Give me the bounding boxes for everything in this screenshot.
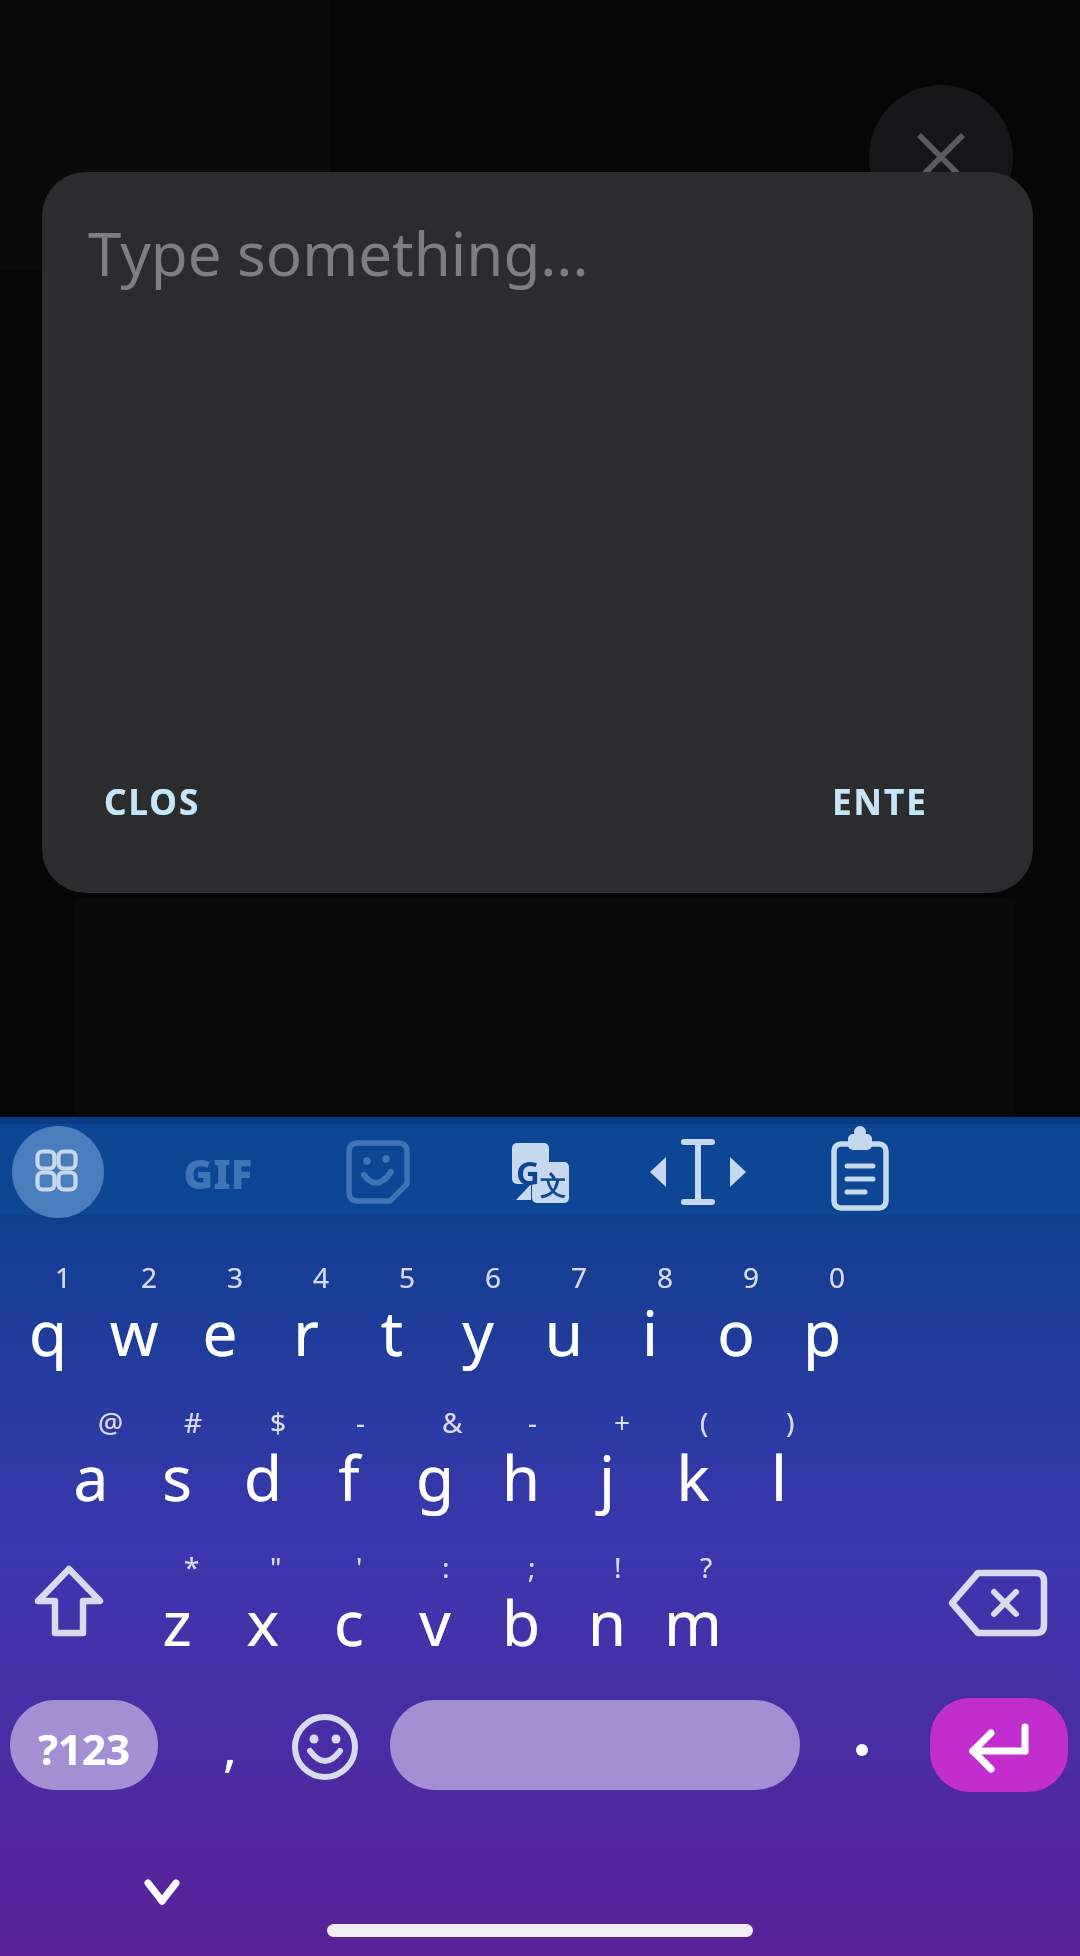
staticText: CLOSE bbox=[104, 778, 204, 836]
staticText: # bbox=[184, 1403, 203, 1441]
button[interactable]: Hide keyboard bbox=[112, 1845, 212, 1939]
button[interactable]: Stickers bbox=[330, 1124, 426, 1220]
staticText: 1 bbox=[55, 1258, 72, 1296]
staticText: 9 bbox=[743, 1258, 760, 1296]
button[interactable]: Period bbox=[812, 1702, 912, 1792]
button[interactable]: o bbox=[693, 1256, 779, 1388]
staticText: l bbox=[736, 1435, 822, 1519]
button[interactable]: i bbox=[607, 1256, 693, 1388]
staticText: Type something... bbox=[88, 212, 589, 294]
button[interactable]: l bbox=[736, 1401, 822, 1533]
staticText: ; bbox=[528, 1548, 536, 1586]
staticText: $ bbox=[270, 1403, 287, 1441]
staticText: 4 bbox=[313, 1258, 330, 1296]
button[interactable]: m bbox=[650, 1546, 736, 1678]
staticText: - bbox=[528, 1403, 538, 1441]
staticText: z bbox=[134, 1580, 220, 1664]
button[interactable]: u bbox=[521, 1256, 607, 1388]
button[interactable]: c bbox=[306, 1546, 392, 1678]
button[interactable]: a bbox=[48, 1401, 134, 1533]
staticText: * bbox=[184, 1548, 200, 1586]
button[interactable]: p bbox=[779, 1256, 865, 1388]
button[interactable]: q bbox=[5, 1256, 91, 1388]
staticText: ?123 bbox=[10, 1720, 158, 1777]
staticText: s bbox=[134, 1435, 220, 1519]
staticText: n bbox=[564, 1580, 650, 1664]
button[interactable]: g bbox=[392, 1401, 478, 1533]
button[interactable]: s bbox=[134, 1401, 220, 1533]
button[interactable]: Enter bbox=[930, 1698, 1068, 1792]
button[interactable]: Emoji bbox=[277, 1702, 373, 1794]
button[interactable]: Type something... bbox=[88, 212, 848, 312]
button[interactable]: k bbox=[650, 1401, 736, 1533]
button[interactable]: z bbox=[134, 1546, 220, 1678]
button[interactable]: x bbox=[220, 1546, 306, 1678]
staticText: & bbox=[442, 1403, 463, 1441]
staticText: ' bbox=[356, 1548, 363, 1586]
staticText: i bbox=[607, 1290, 693, 1374]
staticText: t bbox=[349, 1290, 435, 1374]
staticText: 2 bbox=[141, 1258, 158, 1296]
staticText: e bbox=[177, 1290, 263, 1374]
button[interactable]: Shift bbox=[14, 1546, 126, 1678]
staticText: ( bbox=[700, 1403, 709, 1441]
button[interactable]: ENTER bbox=[832, 778, 952, 836]
staticText: g bbox=[392, 1435, 478, 1519]
button[interactable]: h bbox=[478, 1401, 564, 1533]
button[interactable]: Backspace bbox=[942, 1546, 1054, 1678]
staticText: x bbox=[220, 1580, 306, 1664]
button[interactable]: ?123 bbox=[10, 1700, 158, 1790]
button[interactable]: , bbox=[180, 1702, 280, 1792]
button[interactable]: Text editing bbox=[650, 1124, 746, 1220]
button[interactable]: r bbox=[263, 1256, 349, 1388]
staticText: u bbox=[521, 1290, 607, 1374]
button[interactable]: n bbox=[564, 1546, 650, 1678]
button[interactable]: Space bbox=[390, 1700, 800, 1790]
staticText: ) bbox=[786, 1403, 795, 1441]
button[interactable]: j bbox=[564, 1401, 650, 1533]
staticText: y bbox=[435, 1290, 521, 1374]
button[interactable]: b bbox=[478, 1546, 564, 1678]
staticText: q bbox=[5, 1290, 91, 1374]
staticText: o bbox=[693, 1290, 779, 1374]
staticText: " bbox=[270, 1548, 282, 1586]
staticText: h bbox=[478, 1435, 564, 1519]
staticText: a bbox=[48, 1435, 134, 1519]
button[interactable]: f bbox=[306, 1401, 392, 1533]
button[interactable]: GIF bbox=[170, 1124, 266, 1220]
staticText: f bbox=[306, 1435, 392, 1519]
staticText: 5 bbox=[399, 1258, 416, 1296]
staticText: c bbox=[306, 1580, 392, 1664]
staticText: ENTER bbox=[832, 778, 952, 836]
button[interactable]: e bbox=[177, 1256, 263, 1388]
button[interactable]: Translate bbox=[492, 1124, 588, 1220]
staticText: 7 bbox=[571, 1258, 588, 1296]
staticText: 0 bbox=[829, 1258, 846, 1296]
button[interactable]: y bbox=[435, 1256, 521, 1388]
staticText: 文 bbox=[540, 1170, 566, 1203]
button[interactable]: Clipboard bbox=[812, 1124, 908, 1220]
button[interactable]: Apps bbox=[10, 1124, 106, 1220]
staticText: m bbox=[650, 1580, 736, 1664]
staticText: w bbox=[91, 1290, 177, 1374]
staticText: ? bbox=[700, 1548, 713, 1586]
button[interactable]: d bbox=[220, 1401, 306, 1533]
staticText: v bbox=[392, 1580, 478, 1664]
staticText: 6 bbox=[485, 1258, 502, 1296]
staticText: : bbox=[442, 1548, 450, 1586]
staticText: r bbox=[263, 1290, 349, 1374]
button[interactable]: CLOSE bbox=[104, 778, 204, 836]
staticText: GIF bbox=[168, 1146, 268, 1200]
staticText: b bbox=[478, 1580, 564, 1664]
staticText: 8 bbox=[657, 1258, 674, 1296]
staticText: G bbox=[516, 1150, 540, 1195]
staticText: @ bbox=[98, 1403, 124, 1441]
staticText: k bbox=[650, 1435, 736, 1519]
button[interactable]: v bbox=[392, 1546, 478, 1678]
staticText: - bbox=[356, 1403, 366, 1441]
button[interactable]: w bbox=[91, 1256, 177, 1388]
staticText: j bbox=[564, 1435, 650, 1519]
button[interactable]: t bbox=[349, 1256, 435, 1388]
staticText: ! bbox=[614, 1548, 622, 1586]
button[interactable]: Close dialog bbox=[869, 85, 1013, 229]
